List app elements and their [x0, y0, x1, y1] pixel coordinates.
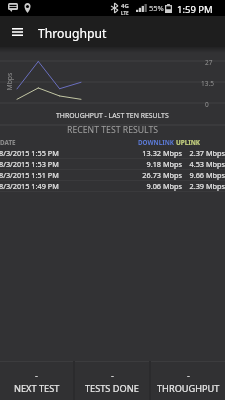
staticText: NEXT TEST: [14, 382, 60, 395]
staticText: Mbps: [4, 72, 13, 90]
button[interactable]: -: [75, 361, 149, 400]
staticText: 8/3/2015 1:49 PM: [0, 181, 59, 191]
staticText: TESTS DONE: [85, 382, 139, 395]
staticText: 9.66 Mbps: [184, 170, 225, 180]
staticText: 13.32 Mbps: [138, 148, 182, 158]
staticText: 8/3/2015 1:53 PM: [0, 159, 59, 169]
button[interactable]: 8/3/2015 1:49 PM: [0, 181, 225, 191]
staticText: Throughput: [38, 25, 107, 42]
staticText: -: [35, 369, 38, 381]
button[interactable]: Open navigation drawer: [0, 16, 34, 47]
staticText: 9.06 Mbps: [138, 181, 182, 191]
staticText: LTE: [121, 10, 129, 16]
staticText: 9.18 Mbps: [138, 159, 182, 169]
staticText: 55%: [149, 3, 164, 13]
button[interactable]: 8/3/2015 1:51 PM: [0, 170, 225, 180]
staticText: UPLINK: [176, 138, 200, 147]
staticText: 27: [205, 58, 213, 67]
staticText: 2.39 Mbps: [184, 181, 225, 191]
button[interactable]: -: [0, 361, 73, 400]
staticText: THROUGHPUT: [157, 382, 220, 395]
staticText: 0: [205, 100, 209, 109]
staticText: 13.5: [201, 79, 214, 88]
staticText: 8/3/2015 1:51 PM: [0, 170, 59, 180]
staticText: 26.73 Mbps: [138, 170, 182, 180]
staticText: DOWNLINK: [138, 138, 175, 147]
button[interactable]: 8/3/2015 1:55 PM: [0, 148, 225, 158]
staticText: -: [187, 369, 190, 381]
button[interactable]: -: [151, 361, 225, 400]
button[interactable]: 8/3/2015 1:53 PM: [0, 159, 225, 169]
staticText: 2.37 Mbps: [184, 148, 225, 158]
staticText: 4.53 Mbps: [184, 159, 225, 169]
staticText: -: [111, 369, 114, 381]
staticText: DATE: [0, 138, 16, 147]
staticText: 1:59 PM: [177, 3, 213, 16]
staticText: RECENT TEST RESULTS: [67, 124, 159, 136]
staticText: THROUGHPUT - LAST TEN RESULTS: [56, 111, 169, 120]
staticText: 8/3/2015 1:55 PM: [0, 148, 59, 158]
staticText: 4G: [121, 2, 129, 10]
